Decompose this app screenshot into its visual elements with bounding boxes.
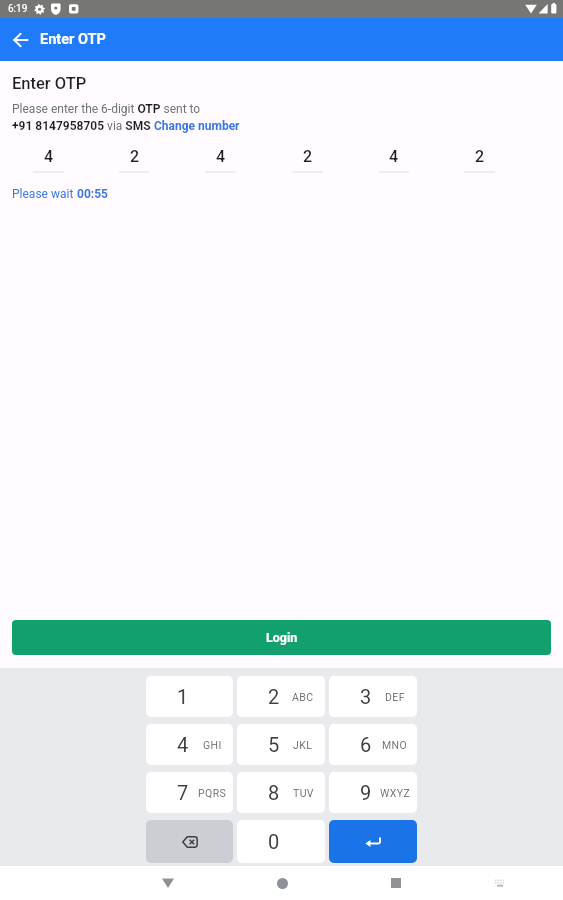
staticText: PQRS <box>198 787 227 799</box>
button[interactable]: 4 <box>378 147 409 173</box>
staticText: JKL <box>293 739 313 751</box>
staticText: 3 <box>360 685 372 708</box>
staticText: 7 <box>177 781 189 804</box>
staticText: 2 <box>268 685 280 708</box>
staticText: 8 <box>268 781 280 804</box>
staticText: 1 <box>177 685 189 708</box>
button[interactable]: Backspace <box>146 820 233 863</box>
staticText: Enter OTP <box>12 74 87 93</box>
staticText: +91 8147958705 via SMS <box>12 119 154 133</box>
staticText: Enter OTP <box>40 31 106 48</box>
button[interactable]: 2 <box>464 147 495 173</box>
button[interactable]: 6 <box>329 724 417 765</box>
button[interactable]: Back <box>7 26 35 54</box>
staticText: DEF <box>385 691 405 703</box>
button[interactable]: 2 <box>119 147 150 173</box>
button[interactable]: 2 <box>237 676 325 717</box>
button[interactable]: Home <box>271 869 294 897</box>
staticText: 00:55 <box>77 187 108 201</box>
staticText: 5 <box>268 733 280 756</box>
staticText: WXYZ <box>380 787 411 799</box>
button[interactable]: Switch keyboard <box>489 872 512 894</box>
button[interactable]: 2 <box>292 147 323 173</box>
staticText: 0 <box>268 830 280 853</box>
staticText: ABC <box>292 691 314 703</box>
staticText: 9 <box>360 781 372 804</box>
staticText: Login <box>266 630 298 645</box>
button[interactable]: Change number <box>154 119 240 133</box>
staticText: 2 <box>130 147 140 166</box>
staticText: 6 <box>360 733 372 756</box>
button[interactable]: 8 <box>237 772 325 813</box>
button[interactable]: Login <box>12 620 551 655</box>
staticText: 4 <box>177 733 189 756</box>
staticText: TUV <box>293 787 314 799</box>
staticText: 4 <box>44 147 54 166</box>
staticText: Please enter the 6-digit OTP sent to <box>12 102 201 116</box>
staticText: MNO <box>382 739 408 751</box>
button[interactable]: 1 <box>146 676 233 717</box>
button[interactable]: Recent apps <box>384 869 407 897</box>
button[interactable]: 4 <box>205 147 236 173</box>
button[interactable]: 4 <box>146 724 233 765</box>
staticText: 2 <box>475 147 485 166</box>
staticText: 4 <box>216 147 226 166</box>
staticText: 2 <box>303 147 313 166</box>
button[interactable]: 7 <box>146 772 233 813</box>
button[interactable]: Enter <box>329 820 417 863</box>
button[interactable]: 5 <box>237 724 325 765</box>
button[interactable]: Back <box>156 869 179 897</box>
staticText: GHI <box>203 739 222 751</box>
staticText: 4 <box>389 147 399 166</box>
button[interactable]: 9 <box>329 772 417 813</box>
button[interactable]: 0 <box>237 820 325 863</box>
button[interactable]: 3 <box>329 676 417 717</box>
staticText: Please wait <box>12 187 77 201</box>
button[interactable]: 4 <box>33 147 64 173</box>
staticText: 6:19 <box>8 3 28 15</box>
